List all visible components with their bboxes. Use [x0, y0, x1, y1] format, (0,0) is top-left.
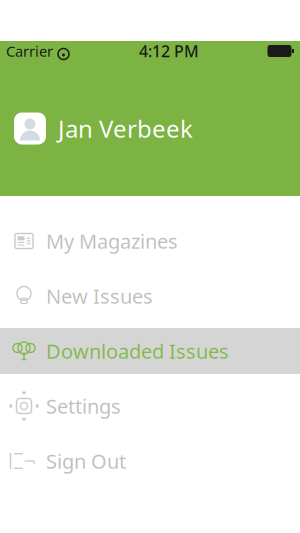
button[interactable]: New Issues — [0, 273, 300, 319]
button[interactable]: Sign Out — [0, 438, 300, 484]
button[interactable]: My Magazines — [0, 218, 300, 264]
staticText: Carrier — [6, 41, 53, 61]
button[interactable]: Downloaded Issues — [0, 328, 300, 374]
staticText: Downloaded Issues — [46, 338, 229, 364]
staticText: New Issues — [46, 283, 153, 309]
staticText: Settings — [46, 393, 121, 419]
staticText: Sign Out — [46, 448, 126, 474]
staticText: 4:12 PM — [139, 40, 199, 62]
button[interactable]: Settings — [0, 383, 300, 429]
staticText: Jan Verbeek — [58, 113, 193, 144]
button[interactable]: Jan Verbeek — [0, 61, 300, 196]
staticText: My Magazines — [46, 228, 178, 254]
